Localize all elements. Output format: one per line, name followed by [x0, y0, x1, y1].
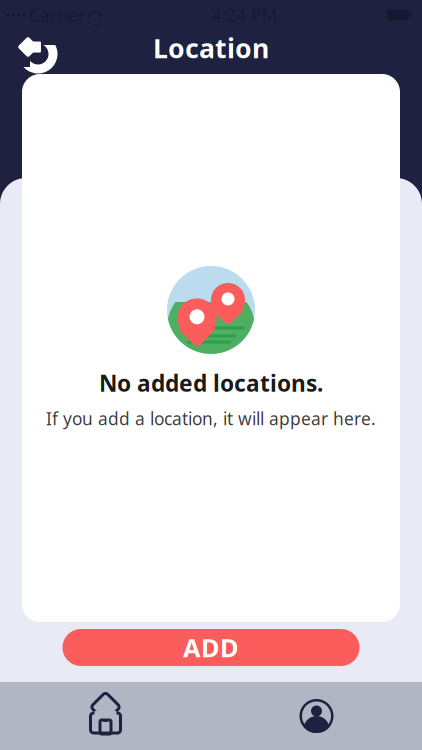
- staticText: 4:24 PM: [211, 3, 277, 26]
- staticText: If you add a location, it will appear he…: [46, 407, 376, 430]
- staticText: No added locations.: [99, 368, 323, 398]
- button[interactable]: Profile: [211, 683, 422, 749]
- button[interactable]: ADD: [62, 629, 359, 666]
- staticText: Carrier: [29, 3, 85, 26]
- staticText: Location: [153, 30, 269, 66]
- button[interactable]: Back: [0, 30, 58, 66]
- button[interactable]: Home: [0, 684, 211, 748]
- staticText: ADD: [183, 631, 239, 664]
